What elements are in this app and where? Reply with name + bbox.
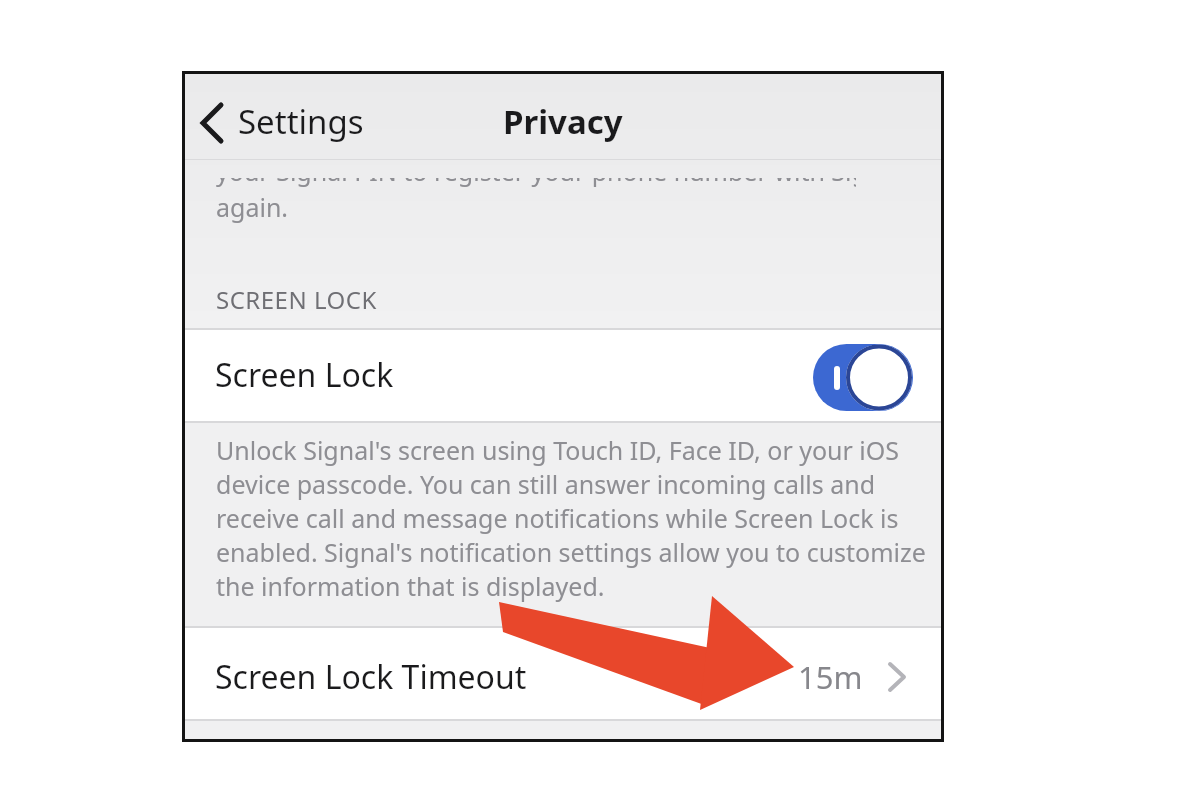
staticText: 15m [798,656,863,698]
staticText: again. [216,190,289,224]
button[interactable] [813,344,913,411]
staticText: Screen Lock [215,353,394,397]
button[interactable]: Screen Lock [185,329,941,421]
staticText: Screen Lock Timeout [215,655,527,699]
button[interactable]: Settings [196,89,426,147]
staticText: Unlock Signal's screen using Touch ID, F… [216,433,926,603]
staticText: Privacy [503,99,623,144]
staticText: your Signal PIN to register your phone n… [216,178,856,188]
button[interactable]: Screen Lock Timeout [185,627,941,720]
staticText: SCREEN LOCK [216,283,377,316]
staticText: Settings [238,99,364,144]
